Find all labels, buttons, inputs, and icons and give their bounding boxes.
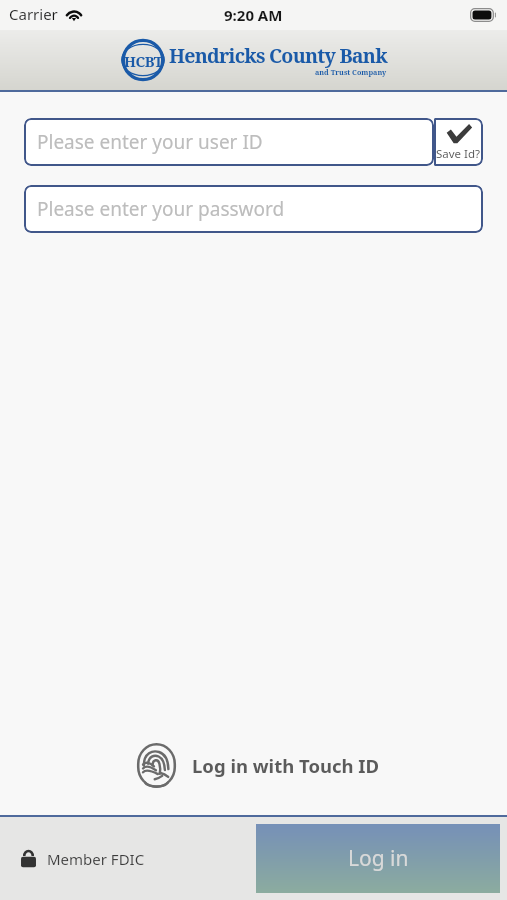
button[interactable]: Save Id [434,118,483,166]
staticText: Hendricks County Bank [169,42,387,69]
button[interactable]: Log in [256,824,500,893]
staticText: HCBT [124,51,163,71]
staticText: Please enter your user ID [37,129,263,155]
other: Wi-Fi [64,6,84,21]
staticText: and Trust Company [315,67,387,77]
button[interactable]: Please enter your password [24,185,483,233]
staticText: Log in with Touch ID [192,753,380,778]
button[interactable]: Please enter your user ID [24,118,434,166]
staticText: 9:20 AM [224,5,283,25]
button[interactable]: Touch ID [0,738,507,792]
staticText: Please enter your password [37,196,285,222]
staticText: Carrier [9,4,58,24]
staticText: Log in [348,844,409,873]
staticText: Save Id? [436,146,481,162]
staticText: Member FDIC [47,849,145,869]
other: Touch ID [137,743,176,788]
